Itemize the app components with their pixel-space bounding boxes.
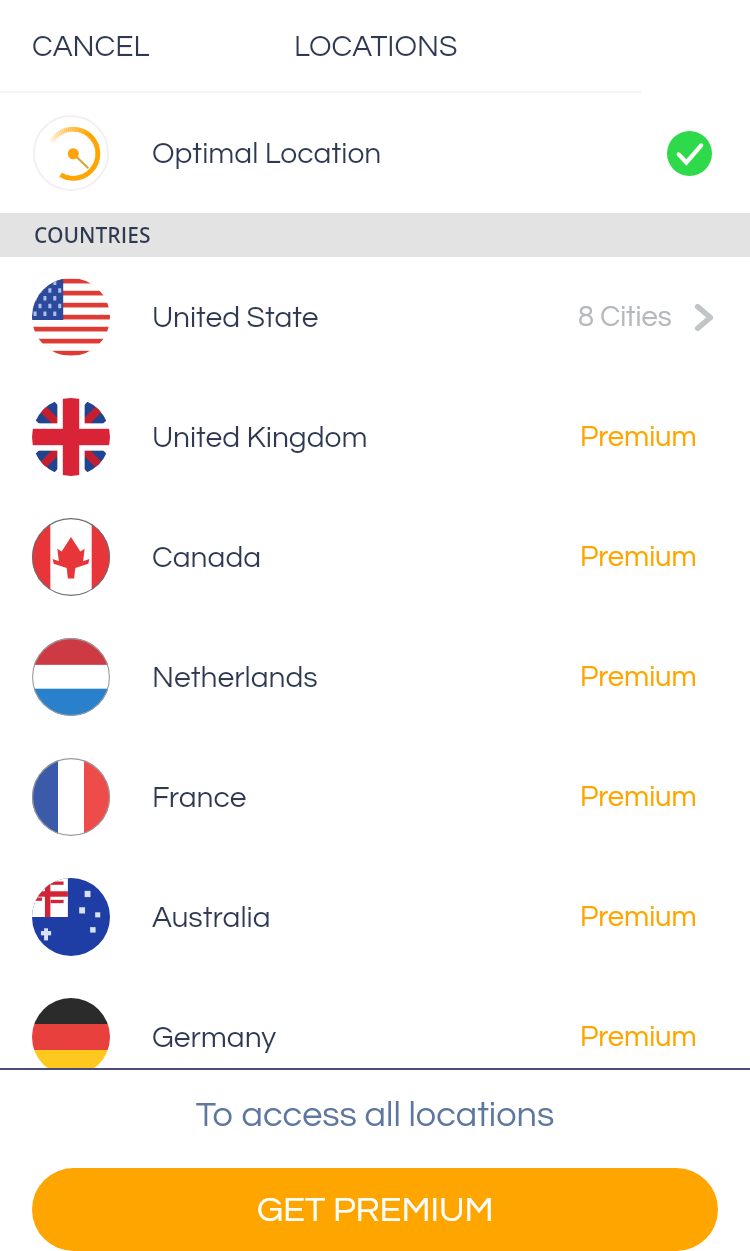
- other: Optimal location speed gauge: [33, 115, 109, 191]
- staticText: Premium: [580, 902, 697, 932]
- button[interactable]: France flag: [0, 737, 750, 857]
- button[interactable]: Netherlands flag: [0, 617, 750, 737]
- button[interactable]: Canada flag: [0, 497, 750, 617]
- button[interactable]: Optimal location speed gauge: [0, 93, 750, 213]
- other: United State flag: [32, 278, 110, 356]
- other: Netherlands flag: [32, 638, 110, 716]
- staticText: Premium: [580, 662, 697, 692]
- staticText: Canada: [152, 542, 262, 573]
- staticText: 8 Cities: [578, 302, 672, 332]
- button[interactable]: GET PREMIUM: [32, 1168, 718, 1251]
- staticText: Australia: [152, 902, 271, 933]
- staticText: France: [152, 782, 247, 813]
- button[interactable]: CANCEL: [0, 15, 174, 78]
- button[interactable]: Germany flag: [0, 977, 750, 1097]
- staticText: Netherlands: [152, 662, 318, 693]
- staticText: LOCATIONS: [294, 31, 458, 62]
- staticText: Germany: [152, 1022, 277, 1053]
- staticText: COUNTRIES: [34, 221, 151, 250]
- other: France flag: [32, 758, 110, 836]
- other: United Kingdom flag: [32, 398, 110, 476]
- staticText: Premium: [580, 422, 697, 452]
- other: Germany flag: [32, 998, 110, 1076]
- staticText: Premium: [580, 1022, 697, 1052]
- other: Show cities: [696, 304, 712, 331]
- other: Selected location: [667, 131, 712, 176]
- staticText: Premium: [580, 782, 697, 812]
- staticText: CANCEL: [32, 31, 150, 62]
- staticText: United Kingdom: [152, 422, 368, 453]
- staticText: GET PREMIUM: [257, 1191, 494, 1228]
- staticText: To access all locations: [0, 1096, 750, 1133]
- staticText: United State: [152, 302, 319, 333]
- staticText: Optimal Location: [152, 138, 382, 169]
- other: Australia flag: [32, 878, 110, 956]
- button[interactable]: United Kingdom flag: [0, 377, 750, 497]
- other: Canada flag: [32, 518, 110, 596]
- button[interactable]: United State flag: [0, 257, 750, 377]
- button[interactable]: Australia flag: [0, 857, 750, 977]
- staticText: Premium: [580, 542, 697, 572]
